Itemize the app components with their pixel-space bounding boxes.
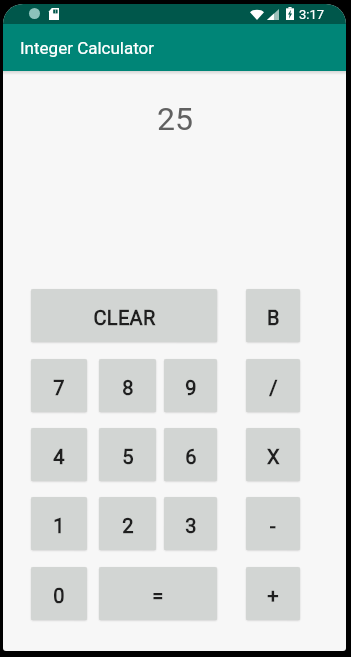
staticText: 6	[185, 445, 197, 468]
staticText: 0	[53, 584, 65, 607]
button[interactable]: /	[246, 359, 300, 412]
button[interactable]: CLEAR	[31, 289, 217, 342]
staticText: 4	[53, 445, 65, 468]
button[interactable]: X	[246, 428, 300, 481]
button[interactable]: 7	[31, 359, 87, 412]
button[interactable]: 6	[164, 428, 217, 481]
button[interactable]: 4	[31, 428, 87, 481]
staticText: CLEAR	[93, 306, 156, 329]
other: Saved	[49, 8, 59, 20]
staticText: =	[152, 584, 164, 607]
staticText: 3	[185, 514, 197, 537]
staticText: 9	[185, 376, 197, 399]
button[interactable]: 3	[164, 497, 217, 550]
staticText: 1	[53, 514, 65, 537]
staticText: B	[267, 306, 280, 329]
staticText: 8	[122, 376, 134, 399]
staticText: 7	[53, 376, 65, 399]
button[interactable]: 9	[164, 359, 217, 412]
staticText: 25	[157, 100, 193, 138]
staticText: Integer Calculator	[20, 38, 155, 58]
staticText: 2	[122, 514, 134, 537]
staticText: -	[270, 514, 276, 537]
button[interactable]: -	[246, 497, 300, 550]
button[interactable]: 8	[99, 359, 156, 412]
staticText: 5	[122, 445, 134, 468]
button[interactable]: 1	[31, 497, 87, 550]
button[interactable]: 0	[31, 567, 87, 620]
button[interactable]: 5	[99, 428, 156, 481]
button[interactable]: 2	[99, 497, 156, 550]
staticText: +	[267, 584, 279, 607]
button[interactable]: +	[246, 567, 300, 620]
button[interactable]: B	[246, 289, 300, 342]
staticText: 3:17	[299, 7, 325, 22]
button[interactable]: =	[99, 567, 217, 620]
staticText: X	[267, 445, 280, 468]
staticText: /	[269, 376, 278, 399]
